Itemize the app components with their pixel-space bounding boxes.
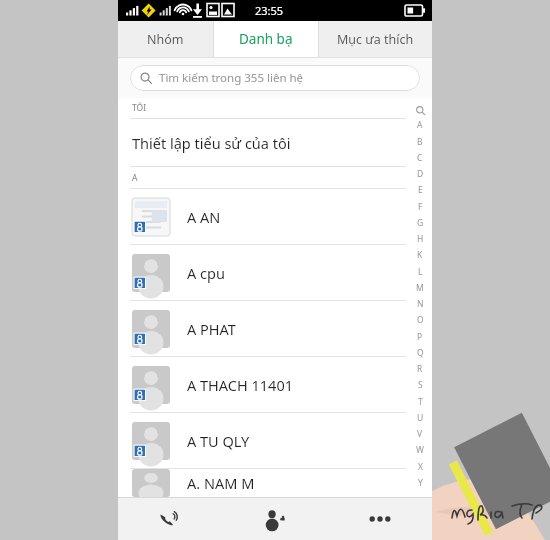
staticText: P	[417, 331, 423, 343]
staticText: A THACH 11401	[187, 375, 293, 395]
staticText: N	[417, 298, 424, 310]
staticText: W	[416, 444, 424, 456]
button[interactable]: Mục ưa thích	[319, 21, 432, 57]
staticText: T	[418, 396, 423, 408]
staticText: X	[418, 461, 423, 473]
button[interactable]: Tìm kiếm trong 355 liên hệ	[130, 65, 420, 91]
button[interactable]: Danh bạ	[214, 21, 318, 57]
staticText: K	[417, 249, 423, 261]
staticText: A cpu	[187, 263, 225, 283]
button[interactable]: Add contact	[222, 498, 327, 540]
button[interactable]: A PHAT	[118, 301, 432, 356]
staticText: D	[417, 168, 424, 180]
staticText: A PHAT	[187, 319, 236, 339]
button[interactable]: Thiết lập tiểu sử của tôi	[118, 119, 432, 166]
staticText: 23:55	[255, 3, 284, 18]
staticText: Danh bạ	[239, 30, 293, 48]
button[interactable]: More options	[327, 498, 432, 540]
staticText: Thiết lập tiểu sử của tôi	[132, 133, 291, 153]
button[interactable]: Alphabet index	[408, 98, 432, 497]
button[interactable]: A TU QLY	[118, 413, 432, 468]
staticText: M	[416, 282, 424, 294]
staticText: Tìm kiếm trong 355 liên hệ	[159, 70, 304, 86]
button[interactable]: Nhóm	[118, 21, 213, 57]
staticText: A. NAM M	[187, 473, 255, 493]
staticText: A	[417, 119, 423, 131]
staticText: Y	[418, 477, 423, 489]
staticText: TÔI	[132, 102, 147, 114]
staticText: F	[418, 201, 423, 213]
button[interactable]: A AN	[118, 189, 432, 244]
staticText: V	[417, 428, 423, 440]
staticText: Q	[417, 347, 424, 359]
button[interactable]: Dialer	[118, 498, 222, 540]
staticText: Nhóm	[147, 31, 184, 48]
staticText: B	[417, 136, 423, 148]
staticText: C	[417, 152, 423, 164]
button[interactable]: A. NAM M	[118, 469, 432, 497]
staticText: Mục ưa thích	[337, 31, 414, 48]
staticText: U	[417, 412, 424, 424]
staticText: O	[417, 314, 424, 326]
staticText: A TU QLY	[187, 431, 250, 451]
staticText: A	[132, 172, 138, 184]
staticText: S	[418, 379, 423, 391]
button[interactable]: A THACH 11401	[118, 357, 432, 412]
staticText: E	[418, 184, 423, 196]
staticText: H	[417, 233, 424, 245]
staticText: G	[417, 217, 424, 229]
staticText: R	[417, 363, 423, 375]
staticText: A AN	[187, 207, 221, 227]
staticText: L	[418, 266, 423, 278]
button[interactable]: A cpu	[118, 245, 432, 300]
